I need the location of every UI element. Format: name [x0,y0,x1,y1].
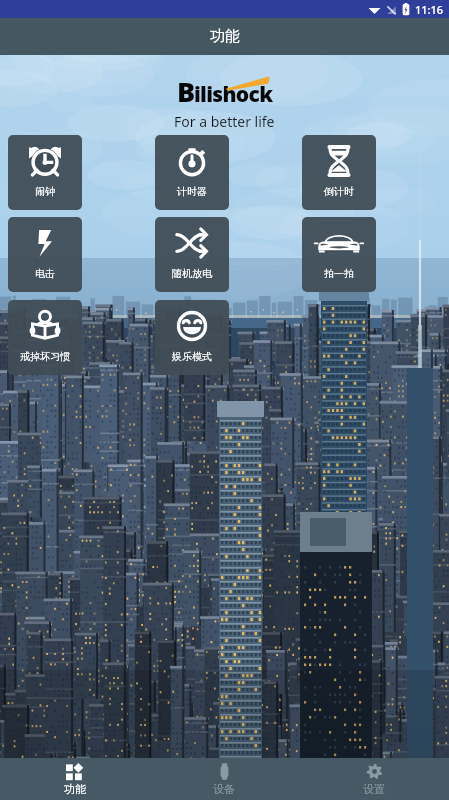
button[interactable]: 戒掉坏习惯 [8,300,82,375]
staticText: 倒计时 [324,185,354,198]
staticText: 拍一拍 [324,267,354,280]
staticText: 娱乐模式 [172,350,212,363]
button[interactable]: Features [0,758,149,800]
staticText: For a better life [174,112,275,131]
other: Devices [216,763,233,780]
staticText: 电击 [35,267,55,280]
button[interactable]: 计时器 [155,135,229,210]
button[interactable]: 拍一拍 [302,217,376,292]
staticText: 戒掉坏习惯 [20,350,70,363]
staticText: ilishock [194,80,273,109]
button[interactable]: 电击 [8,217,82,292]
staticText: 计时器 [177,185,207,198]
other: Settings [366,763,383,780]
button[interactable]: 随机放电 [155,217,229,292]
button[interactable]: 倒计时 [302,135,376,210]
staticText: B [177,73,194,110]
staticText: 设置 [363,782,385,796]
staticText: 设备 [213,782,235,796]
staticText: 功能 [210,27,240,46]
button[interactable]: 闹钟 [8,135,82,210]
staticText: 闹钟 [35,185,55,198]
staticText: 随机放电 [172,267,212,280]
staticText: 功能 [64,782,86,796]
button[interactable]: 娱乐模式 [155,300,229,375]
button[interactable]: Settings [299,758,449,800]
staticText: 11:16 [415,2,444,17]
button[interactable]: Devices [149,758,299,800]
other: Features [66,763,83,780]
